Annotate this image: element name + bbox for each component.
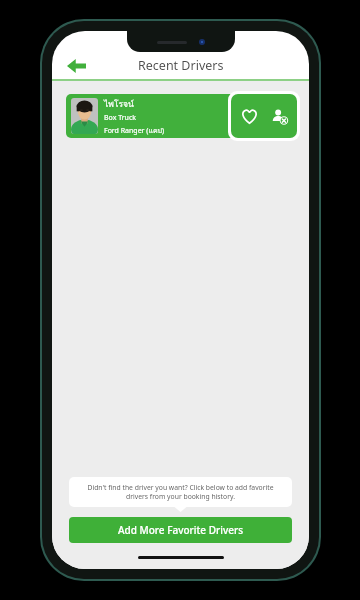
button[interactable]: Remove driver bbox=[266, 103, 292, 129]
staticText: Didn't find the driver you want? Click b… bbox=[77, 483, 284, 501]
button[interactable]: Back bbox=[61, 54, 91, 78]
staticText: Add More Favorite Drivers bbox=[118, 523, 244, 537]
staticText: Ford Ranger (แคป) bbox=[104, 125, 165, 136]
staticText: Recent Drivers bbox=[138, 57, 224, 74]
staticText: Box Truck bbox=[104, 113, 137, 123]
button[interactable]: Favorite bbox=[236, 103, 262, 129]
button[interactable]: ไพโรจน์ bbox=[66, 94, 260, 138]
staticText: ไพโรจน์ bbox=[104, 97, 134, 111]
button[interactable]: Add More Favorite Drivers bbox=[69, 517, 292, 543]
